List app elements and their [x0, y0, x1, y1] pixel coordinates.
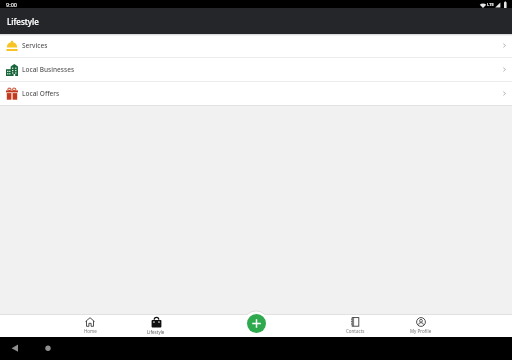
staticText: Services [22, 41, 48, 50]
button[interactable]: Local Businesses [0, 58, 512, 81]
staticText: Lifestyle [7, 16, 39, 27]
staticText: Local Businesses [22, 65, 75, 74]
button[interactable]: Contacts [335, 317, 375, 334]
staticText: Lifestyle [147, 329, 165, 335]
button[interactable]: Lifestyle [136, 317, 176, 335]
staticText: Home [84, 328, 97, 334]
button[interactable]: Services [0, 34, 512, 57]
button[interactable] [247, 314, 266, 333]
staticText: Contacts [346, 328, 365, 334]
staticText: Local Offers [22, 89, 60, 98]
staticText: 9:00 [6, 1, 17, 8]
button[interactable]: Home [70, 317, 110, 334]
staticText: My Profile [410, 328, 432, 334]
staticText: LTE [487, 2, 494, 7]
button[interactable]: Local Offers [0, 82, 512, 105]
button[interactable]: My Profile [401, 317, 441, 334]
